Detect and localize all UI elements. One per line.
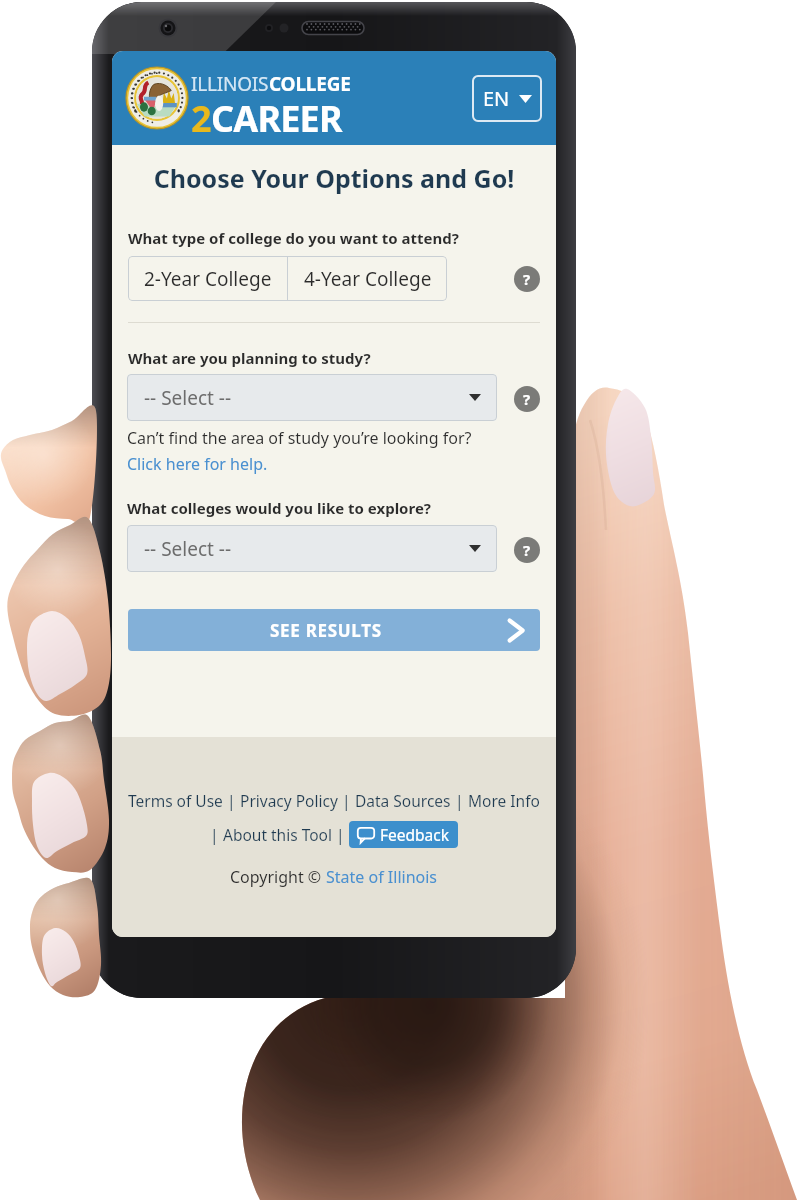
- button[interactable]: SEE RESULTS: [128, 609, 540, 651]
- button[interactable]: Help: [514, 537, 540, 563]
- button[interactable]: About this Tool: [223, 824, 332, 845]
- staticText: Click here for help.: [127, 453, 268, 475]
- button[interactable]: Help: [514, 266, 540, 292]
- staticText: 2-Year College: [144, 266, 272, 292]
- staticText: More Info: [468, 790, 540, 811]
- staticText: ILLINOIS: [191, 71, 269, 97]
- button[interactable]: Terms of Use: [128, 790, 223, 811]
- staticText: |: [210, 824, 223, 845]
- button[interactable]: -- Select --: [127, 374, 497, 421]
- staticText: Privacy Policy: [240, 790, 338, 811]
- staticText: COLLEGE: [269, 71, 351, 97]
- button[interactable]: 4-Year College: [288, 256, 447, 301]
- staticText: Copyright ©: [230, 866, 326, 888]
- staticText: What type of college do you want to atte…: [128, 228, 459, 248]
- button[interactable]: More Info: [468, 790, 540, 811]
- staticText: About this Tool: [223, 824, 332, 845]
- staticText: |: [332, 824, 349, 845]
- button[interactable]: EN: [472, 75, 542, 122]
- staticText: Feedback: [380, 824, 450, 845]
- staticText: Choose Your Options and Go!: [112, 161, 556, 195]
- staticText: |: [451, 790, 468, 811]
- staticText: ?: [523, 389, 531, 409]
- button[interactable]: Privacy Policy: [240, 790, 338, 811]
- staticText: CAREER: [211, 94, 342, 143]
- button[interactable]: Data Sources: [355, 790, 451, 811]
- staticText: -- Select --: [144, 385, 232, 411]
- staticText: SEE RESULTS: [270, 619, 382, 642]
- staticText: |: [223, 790, 240, 811]
- button[interactable]: State of Illinois: [326, 866, 438, 888]
- staticText: ?: [523, 540, 531, 560]
- staticText: EN: [483, 85, 510, 112]
- staticText: -- Select --: [144, 536, 232, 562]
- staticText: What are you planning to study?: [128, 348, 371, 368]
- button[interactable]: 2-Year College: [128, 256, 287, 301]
- button[interactable]: Help: [514, 386, 540, 412]
- staticText: Can’t find the area of study you’re look…: [127, 427, 472, 449]
- staticText: What colleges would you like to explore?: [127, 498, 431, 518]
- staticText: |: [338, 790, 355, 811]
- staticText: State of Illinois: [326, 866, 438, 888]
- button[interactable]: -- Select --: [127, 525, 497, 572]
- staticText: ?: [523, 269, 531, 289]
- staticText: Terms of Use: [128, 790, 223, 811]
- staticText: Data Sources: [355, 790, 451, 811]
- button[interactable]: Feedback: [349, 821, 458, 848]
- staticText: 4-Year College: [304, 266, 432, 292]
- button[interactable]: Click here for help.: [127, 453, 268, 475]
- staticText: 2: [191, 94, 211, 143]
